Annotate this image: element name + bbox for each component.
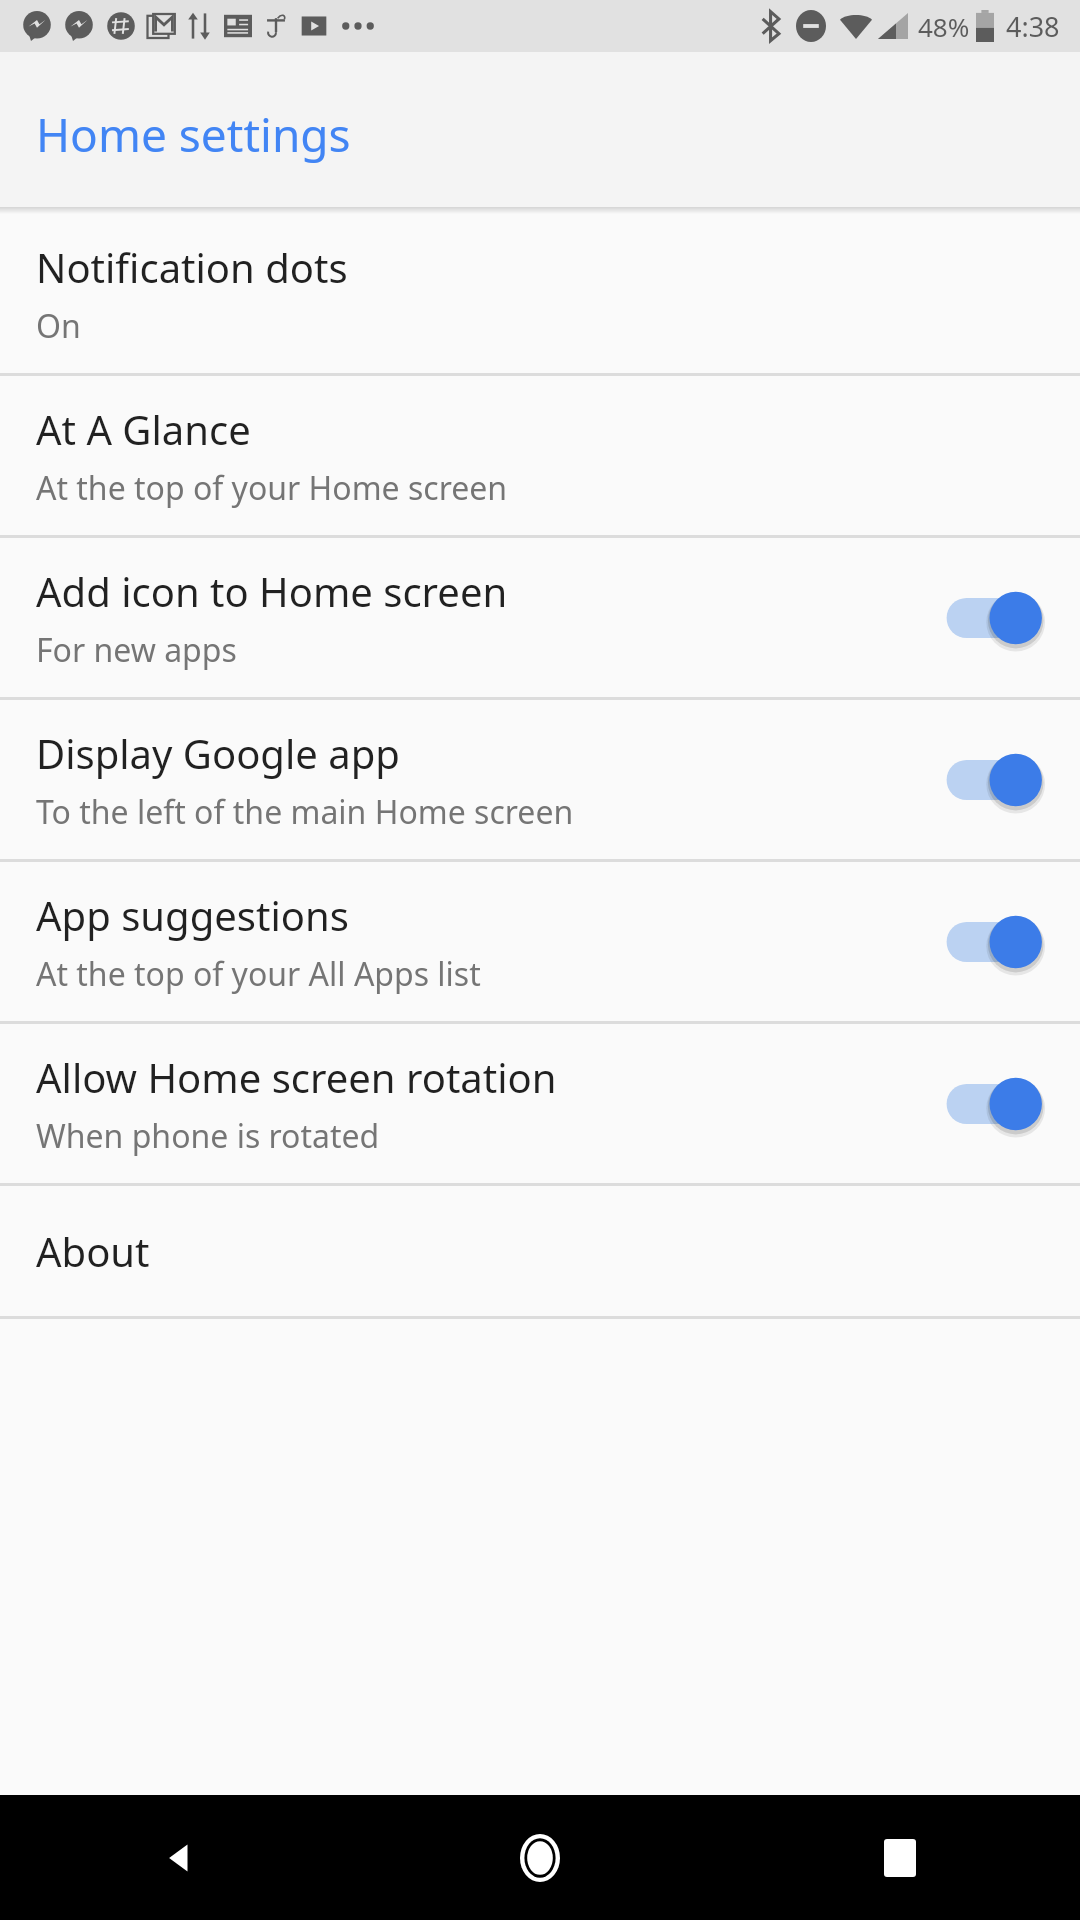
button[interactable]: Toggle [940, 1066, 1050, 1142]
staticText: About [36, 1224, 150, 1278]
button[interactable]: At A Glance [0, 376, 1080, 535]
button[interactable]: Toggle [940, 580, 1050, 656]
button[interactable]: App suggestions [0, 862, 1080, 1021]
staticText: Add icon to Home screen [36, 564, 508, 618]
staticText: Notification dots [36, 240, 348, 294]
button[interactable]: Home [360, 1795, 720, 1920]
staticText: 48% [918, 9, 970, 44]
staticText: On [36, 304, 81, 348]
staticText: When phone is rotated [36, 1114, 380, 1158]
button[interactable]: Toggle [940, 904, 1050, 980]
button[interactable]: Notification dots [0, 214, 1080, 373]
staticText: App suggestions [36, 888, 349, 942]
staticText: Display Google app [36, 726, 400, 780]
button[interactable]: Add icon to Home screen [0, 538, 1080, 697]
staticText: To the left of the main Home screen [36, 790, 574, 834]
button[interactable]: Display Google app [0, 700, 1080, 859]
staticText: At the top of your Home screen [36, 466, 508, 510]
staticText: Allow Home screen rotation [36, 1050, 557, 1104]
button[interactable]: Allow Home screen rotation [0, 1024, 1080, 1183]
staticText: 4:38 [1006, 8, 1060, 45]
staticText: At A Glance [36, 402, 251, 456]
button[interactable]: About [0, 1186, 1080, 1316]
staticText: For new apps [36, 628, 237, 672]
staticText: Home settings [36, 103, 351, 166]
button[interactable]: Back [0, 1795, 360, 1920]
button[interactable]: Recents [720, 1795, 1080, 1920]
staticText: At the top of your All Apps list [36, 952, 481, 996]
button[interactable]: Toggle [940, 742, 1050, 818]
